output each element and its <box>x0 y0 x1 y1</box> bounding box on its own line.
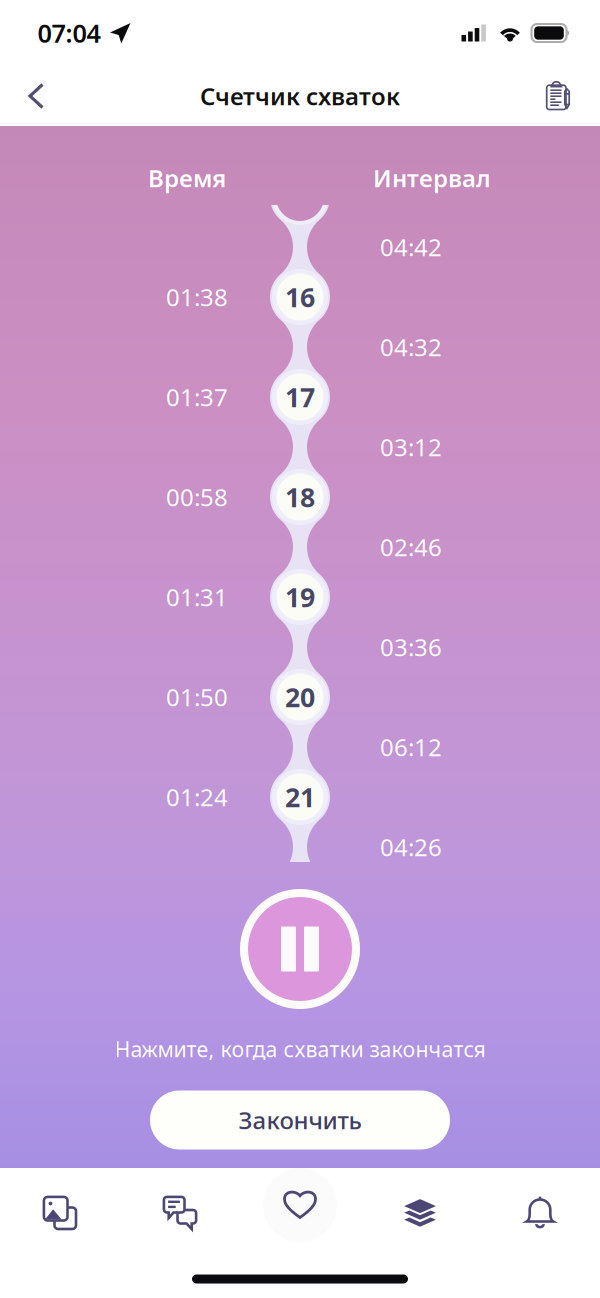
staticText: Время <box>148 162 226 194</box>
staticText: 03:36 <box>380 631 442 663</box>
staticText: 01:50 <box>166 681 228 713</box>
staticText: 04:32 <box>380 331 442 363</box>
button[interactable]: Галерея <box>12 1174 108 1252</box>
button[interactable]: Закончить <box>150 1090 450 1149</box>
staticText: 03:12 <box>380 431 442 463</box>
staticText: 04:42 <box>380 231 442 263</box>
staticText: Нажмите, когда схватки закончатся <box>114 1035 485 1063</box>
button[interactable]: Избранное <box>252 1166 348 1244</box>
button[interactable]: Назад <box>8 68 64 124</box>
staticText: 20 <box>285 679 315 715</box>
staticText: Счетчик схваток <box>200 80 400 112</box>
staticText: 21 <box>285 779 315 815</box>
staticText: 01:24 <box>166 781 228 813</box>
button[interactable]: История <box>530 68 586 124</box>
staticText: 17 <box>285 379 315 415</box>
staticText: Интервал <box>373 162 491 194</box>
staticText: 01:38 <box>166 281 228 313</box>
staticText: 06:12 <box>380 731 442 763</box>
staticText: Закончить <box>238 1104 361 1136</box>
staticText: 00:58 <box>166 481 228 513</box>
staticText: 02:46 <box>380 531 442 563</box>
staticText: 01:31 <box>166 581 228 613</box>
button[interactable]: Пауза <box>238 887 362 1011</box>
staticText: 07:04 <box>37 16 100 50</box>
button[interactable]: Чат <box>132 1174 228 1252</box>
staticText: 19 <box>285 579 315 615</box>
staticText: 04:26 <box>380 831 442 863</box>
button[interactable]: Подборки <box>372 1174 468 1252</box>
staticText: 18 <box>285 479 315 515</box>
button[interactable]: Уведомления <box>492 1174 588 1252</box>
staticText: 01:37 <box>166 381 228 413</box>
staticText: 16 <box>285 279 315 315</box>
